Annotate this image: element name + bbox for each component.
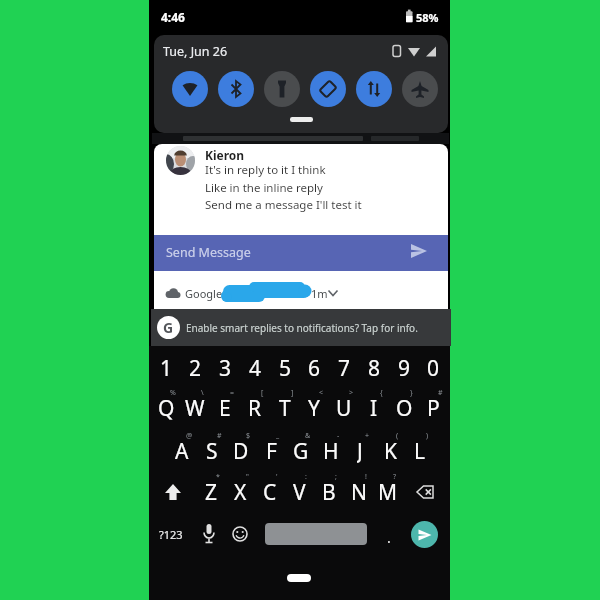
staticText: A [175,437,189,465]
staticText: T [279,394,291,422]
staticText: I [370,394,378,422]
staticText: V [293,478,306,506]
staticText: 5 [279,354,292,382]
staticText: M [378,478,398,506]
staticText: X [234,478,247,506]
staticText: F [266,437,277,465]
button[interactable] [411,521,438,548]
staticText: _ [276,431,280,441]
staticText: * [216,472,220,482]
staticText: 2 [189,354,202,382]
button[interactable] [172,71,208,107]
button[interactable] [264,71,300,107]
staticText: ; [335,472,337,482]
staticText: R [248,394,262,422]
staticText: & [305,431,311,441]
staticText: E [219,394,231,422]
staticText: Z [205,478,218,506]
staticText: Like in the inline reply [205,180,323,196]
staticText: ?123 [159,527,183,542]
staticText: 8 [368,354,381,382]
staticText: Q [158,394,175,422]
staticText: 4:46 [161,9,185,25]
staticText: 0 [427,354,440,382]
staticText: ] [291,388,294,398]
staticText: = [230,388,235,398]
staticText: { [380,388,383,398]
staticText: Send me a message I'll test it [205,197,362,213]
staticText: W [185,394,205,422]
staticText: 3 [219,354,232,382]
staticText: K [384,437,397,465]
staticText: - [337,431,340,441]
button[interactable] [310,71,346,107]
staticText: : [305,472,307,482]
staticText: Y [308,394,320,422]
staticText: C [263,478,277,506]
staticText: D [233,437,249,465]
staticText: + [365,431,370,441]
staticText: H [323,437,339,465]
staticText: It's in reply to it I think [205,162,326,178]
staticText: \ [201,388,204,398]
button[interactable] [157,478,189,506]
staticText: ) [426,431,429,441]
staticText: [ [261,388,264,398]
staticText: " [246,472,249,482]
staticText: G [163,318,174,337]
staticText: 4 [249,354,262,382]
button[interactable] [409,478,441,506]
staticText: ' [276,472,278,482]
staticText: 1 [160,354,173,382]
staticText: Google · [185,286,228,301]
staticText: % [170,388,176,398]
staticText: U [336,394,352,422]
button[interactable] [356,71,392,107]
button[interactable] [151,309,451,346]
staticText: Kieron [205,147,245,162]
staticText: S [206,437,218,465]
staticText: > [349,388,354,398]
button[interactable] [402,71,438,107]
staticText: O [396,394,413,422]
staticText: } [410,388,413,398]
staticText: . [387,528,391,546]
staticText: L [414,437,426,465]
staticText: ( [396,431,399,441]
button[interactable] [154,235,448,271]
staticText: P [427,394,440,422]
staticText: ? [393,472,397,482]
staticText: N [351,478,367,506]
staticText: 9 [398,354,411,382]
staticText: Tue, Jun 26 [163,43,228,60]
button[interactable] [218,71,254,107]
staticText: Enable smart replies to notifications? T… [186,321,418,335]
staticText: # [438,388,443,398]
staticText: 58% [416,10,439,25]
staticText: # [217,431,222,441]
staticText: @ [186,431,193,441]
staticText: 1m [311,286,328,301]
staticText: ! [365,472,367,482]
staticText: Send Message [166,244,251,261]
staticText: $ [246,431,251,441]
staticText: B [322,478,336,506]
staticText: 6 [308,354,321,382]
button[interactable] [265,523,367,545]
staticText: 7 [338,354,351,382]
staticText: < [319,388,324,398]
staticText: J [357,437,363,465]
button[interactable] [154,271,448,310]
staticText: G [293,437,309,465]
